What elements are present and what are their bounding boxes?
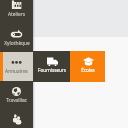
button[interactable]: Xylothèque [0,24,33,53]
button[interactable]: Ateliers [0,0,33,24]
button[interactable]: Annuaires [0,52,33,81]
staticText: Fournisseurs [38,67,66,73]
button[interactable]: Contacts [0,109,33,128]
staticText: Travaillez [6,97,27,104]
staticText: Écoles [81,67,95,73]
staticText: Ateliers [8,11,25,18]
button[interactable]: Fournisseurs [33,51,70,82]
button[interactable]: Écoles [70,51,105,82]
button[interactable]: Travaillez [0,81,33,110]
staticText: Annuaires [5,68,28,75]
staticText: Xylothèque [4,40,30,47]
